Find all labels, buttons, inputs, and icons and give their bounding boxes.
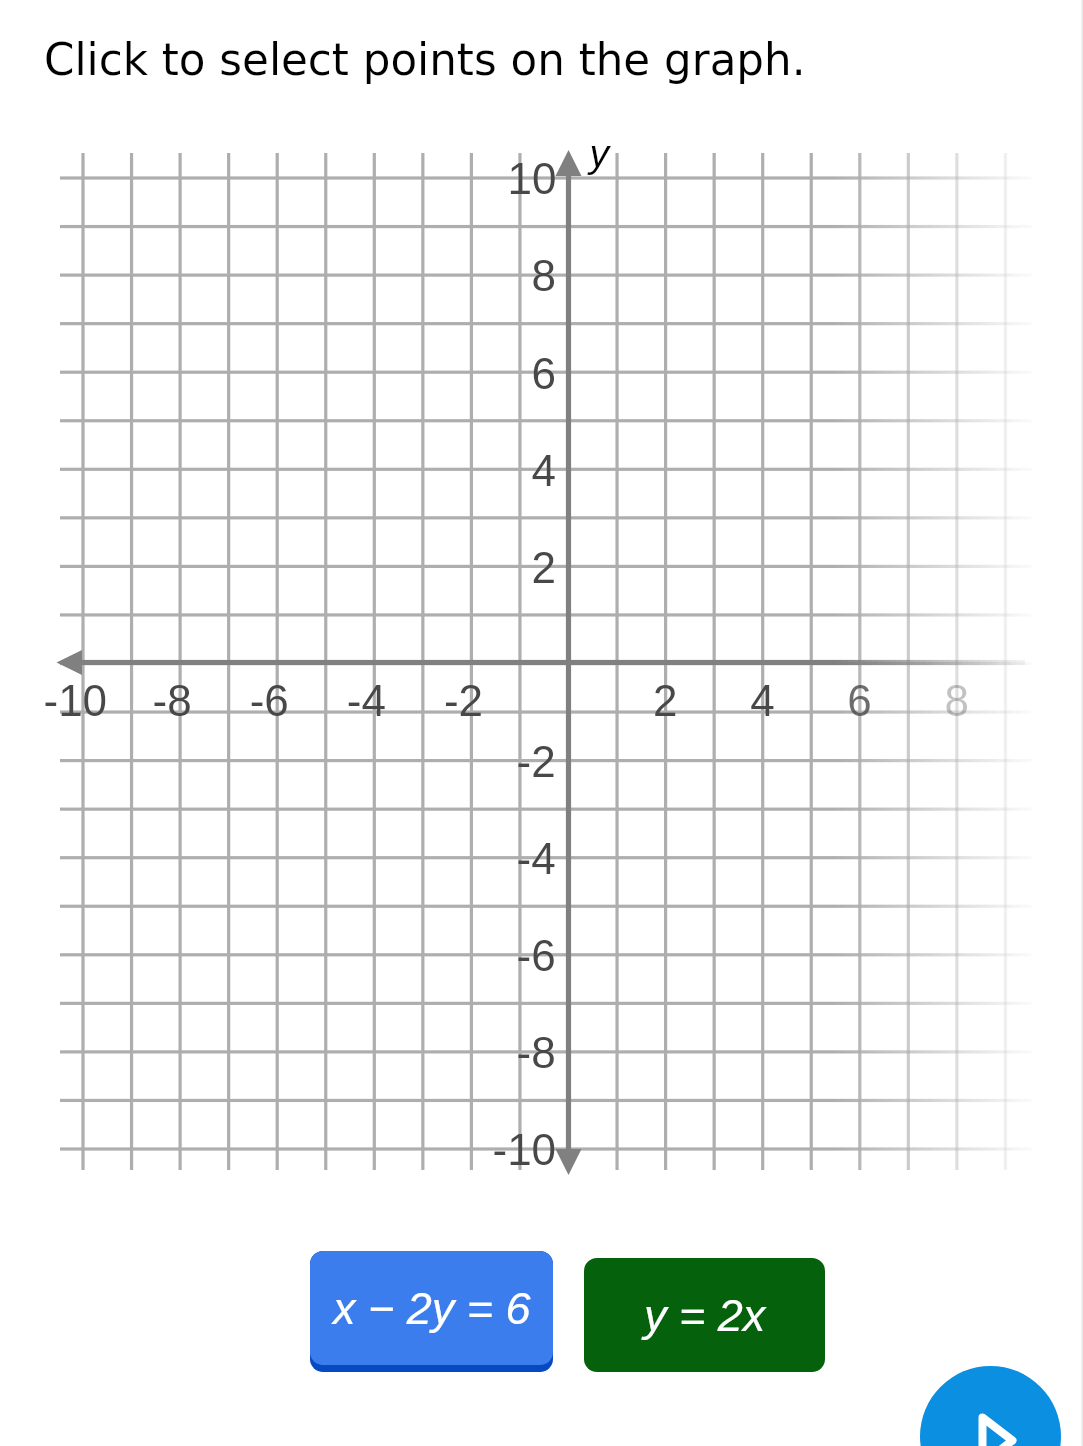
staticText: x − 2y = 6: [333, 1283, 531, 1333]
staticText: y = 2x: [644, 1290, 766, 1340]
button[interactable]: y = 2x: [584, 1258, 825, 1372]
button[interactable]: Play: [920, 1366, 1061, 1446]
button[interactable]: x − 2y = 6: [310, 1251, 553, 1372]
button[interactable]: Coordinate grid, tap to select a point: [56, 150, 1016, 1176]
staticText: Click to select points on the graph.: [44, 35, 806, 86]
